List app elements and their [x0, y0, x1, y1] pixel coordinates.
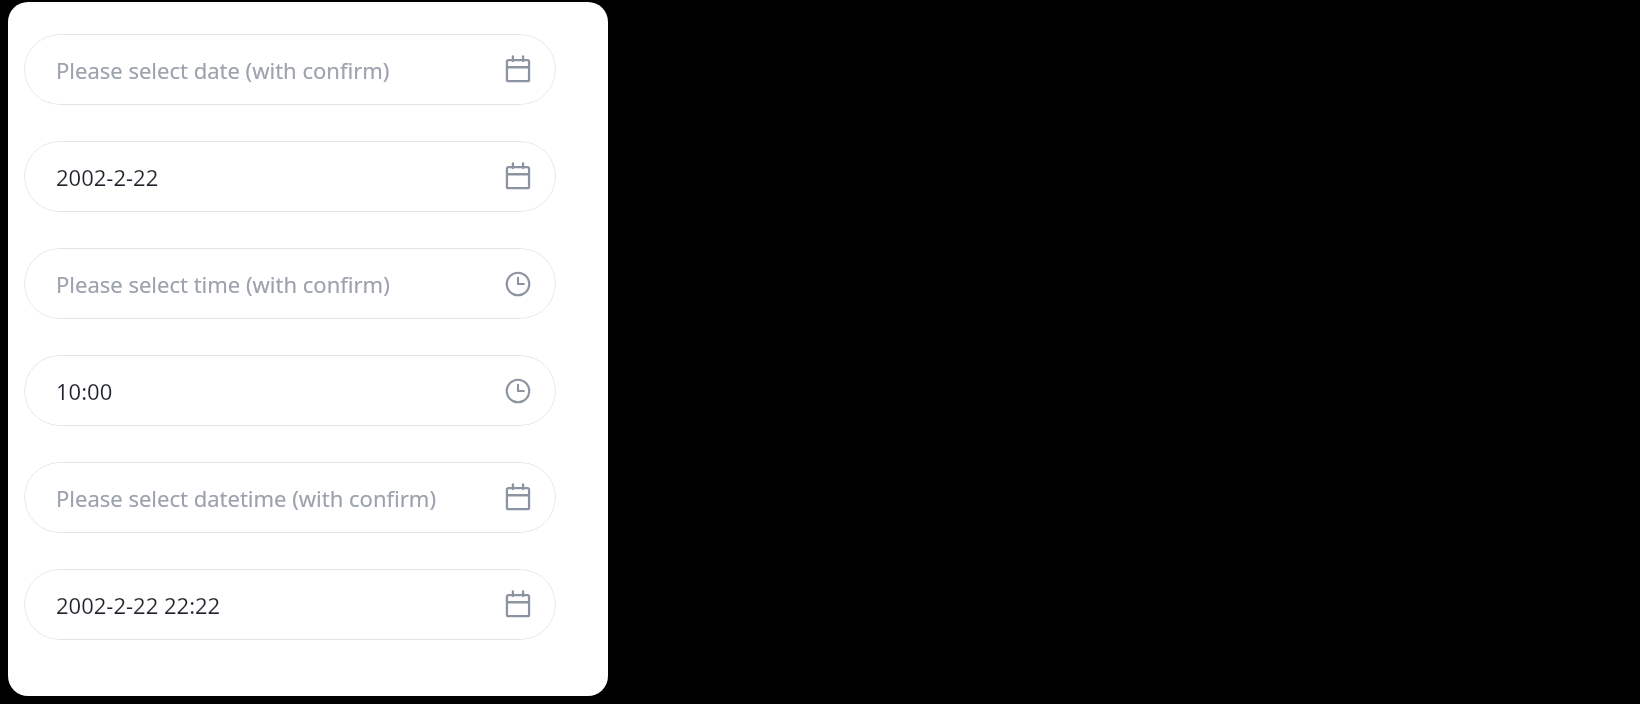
staticText: 10:00	[56, 376, 503, 406]
button[interactable]: Select datetime	[24, 569, 556, 640]
staticText: Please select time (with confirm)	[56, 269, 503, 299]
button[interactable]: Select date	[24, 141, 556, 212]
staticText: Please select datetime (with confirm)	[56, 483, 503, 513]
button[interactable]: Select date	[24, 34, 556, 105]
staticText: 2002-2-22 22:22	[56, 590, 503, 620]
button[interactable]: Select time	[24, 248, 556, 319]
button[interactable]: Select datetime	[24, 462, 556, 533]
staticText: 2002-2-22	[56, 162, 503, 192]
button[interactable]: Select time	[24, 355, 556, 426]
staticText: Please select date (with confirm)	[56, 55, 503, 85]
